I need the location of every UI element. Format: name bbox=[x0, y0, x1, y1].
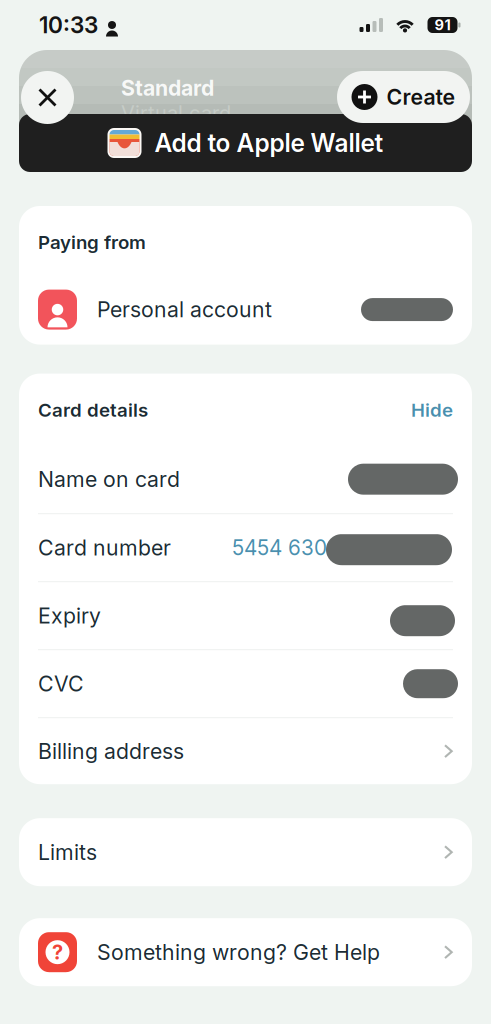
staticText: Hide bbox=[411, 399, 453, 421]
staticText: Card details bbox=[38, 399, 148, 421]
staticText: Standard bbox=[121, 75, 214, 101]
staticText: Create bbox=[386, 84, 455, 110]
button[interactable]: Close bbox=[21, 71, 74, 124]
staticText: Card number bbox=[38, 535, 171, 561]
staticText: Personal account bbox=[97, 297, 272, 322]
staticText: CVC bbox=[38, 671, 84, 697]
button[interactable]: Limits bbox=[19, 818, 472, 886]
staticText: Expiry bbox=[38, 603, 101, 629]
staticText: Billing address bbox=[38, 738, 184, 764]
button[interactable]: ? bbox=[19, 918, 472, 986]
button[interactable]: Personal account bbox=[19, 280, 472, 340]
staticText: ? bbox=[52, 940, 63, 964]
button[interactable]: Hide bbox=[411, 399, 453, 421]
button[interactable]: Create bbox=[337, 71, 470, 123]
staticText: Virtual card bbox=[121, 101, 231, 125]
button[interactable]: Billing address bbox=[19, 718, 472, 784]
staticText: Paying from bbox=[38, 231, 146, 254]
staticText: 91 bbox=[434, 16, 450, 34]
staticText: Something wrong? Get Help bbox=[97, 939, 380, 965]
staticText: Name on card bbox=[38, 466, 180, 492]
staticText: 10:33 bbox=[39, 11, 98, 39]
staticText: Add to Apple Wallet bbox=[154, 128, 383, 158]
staticText: 5454 630 bbox=[232, 535, 327, 560]
staticText: Limits bbox=[38, 839, 97, 865]
